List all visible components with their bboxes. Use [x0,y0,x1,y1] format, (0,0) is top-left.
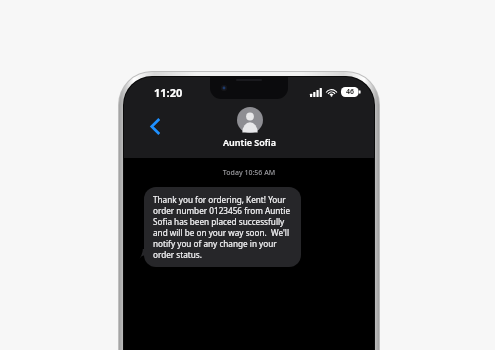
staticText: Auntie Sofia [223,136,276,148]
staticText: 11:20 [154,85,183,100]
staticText: Today 10:56 AM [124,168,374,178]
button[interactable]: Thank you for ordering, Kent! Your order… [144,187,301,267]
staticText: Thank you for ordering, Kent! Your order… [153,194,292,260]
button[interactable]: Auntie Sofia [223,107,276,148]
staticText: 46 [346,87,355,97]
button[interactable]: Back [143,114,167,138]
